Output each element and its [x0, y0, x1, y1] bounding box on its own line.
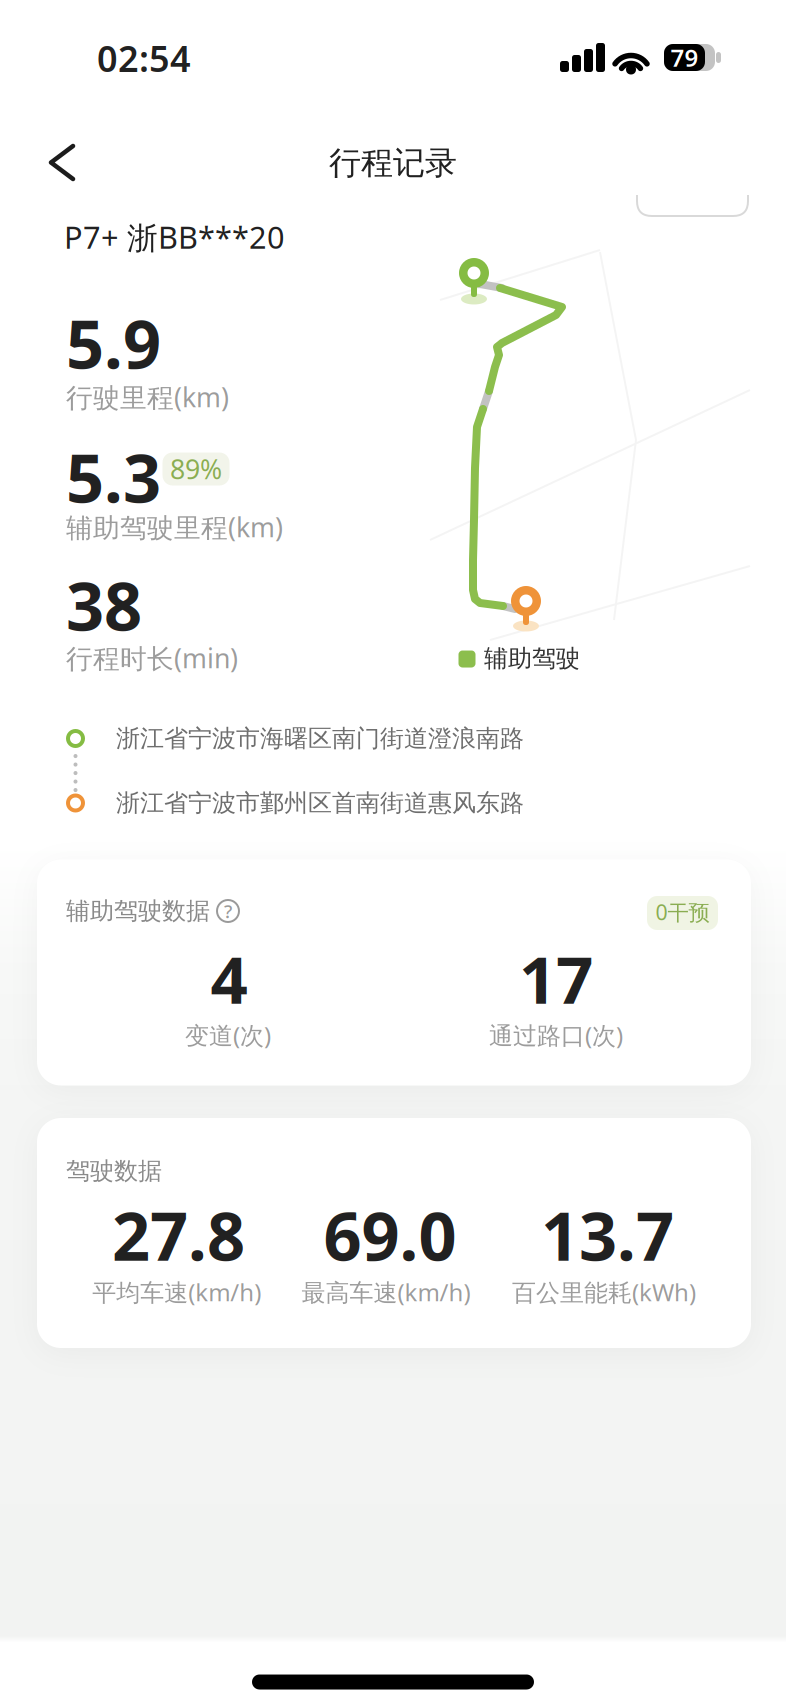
staticText: 辅助驾驶: [484, 644, 580, 673]
staticText: 辅助驾驶数据: [66, 896, 210, 926]
button[interactable]: 说明: [216, 899, 240, 923]
staticText: 17: [519, 935, 593, 1022]
staticText: 驾驶数据: [66, 1156, 162, 1186]
staticText: P7+ 浙BB***20: [64, 217, 285, 257]
staticText: 4: [210, 935, 247, 1022]
staticText: 02:54: [97, 34, 191, 82]
staticText: 5.3: [66, 433, 161, 521]
staticText: 27.8: [112, 1191, 245, 1279]
button[interactable]: 更多: [0, 0, 786, 1704]
staticText: 5.9: [66, 299, 161, 387]
staticText: 变道(次): [185, 1019, 271, 1051]
staticText: 89%: [170, 451, 222, 487]
staticText: 0干预: [655, 898, 709, 926]
staticText: 浙江省宁波市海曙区南门街道澄浪南路: [116, 724, 524, 753]
staticText: 38: [66, 561, 142, 649]
staticText: 79: [670, 42, 698, 73]
staticText: 平均车速(km/h): [92, 1276, 261, 1308]
staticText: 行程时长(min): [66, 640, 238, 676]
staticText: 最高车速(km/h): [301, 1276, 470, 1308]
staticText: 百公里能耗(kWh): [512, 1276, 696, 1308]
staticText: 浙江省宁波市鄞州区首南街道惠风东路: [116, 788, 524, 818]
staticText: 13.7: [541, 1191, 674, 1279]
staticText: 辅助驾驶里程(km): [66, 509, 283, 545]
staticText: 通过路口(次): [489, 1019, 623, 1051]
staticText: 69.0: [323, 1191, 456, 1279]
button[interactable]: 返回: [0, 0, 786, 1704]
staticText: ?: [224, 899, 232, 923]
staticText: 行程记录: [329, 143, 457, 183]
staticText: 行驶里程(km): [66, 379, 229, 415]
